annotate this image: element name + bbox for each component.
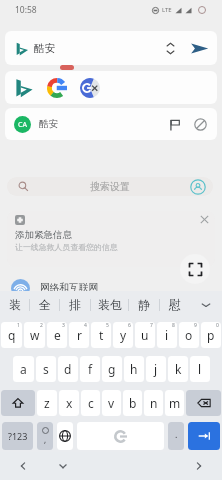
button[interactable]: v	[102, 390, 121, 416]
button[interactable]: w	[24, 322, 45, 348]
button[interactable]: a	[13, 356, 34, 382]
button[interactable]: Forward	[176, 452, 222, 480]
staticText: r	[77, 327, 82, 343]
staticText: ?123	[8, 430, 28, 442]
button[interactable]: f	[80, 356, 100, 382]
staticText: a	[20, 361, 27, 377]
staticText: m	[169, 395, 181, 411]
button[interactable]: .	[168, 422, 184, 450]
button[interactable]: e	[47, 322, 67, 348]
staticText: w	[30, 327, 40, 343]
button[interactable]: ?123	[2, 422, 33, 450]
button[interactable]: 全	[30, 291, 59, 318]
staticText: j	[154, 361, 158, 377]
staticText: 装	[9, 297, 21, 312]
button[interactable]: Block	[192, 116, 209, 133]
staticText: 3	[62, 322, 65, 329]
staticText: 静	[138, 297, 150, 312]
button[interactable]: d	[58, 356, 78, 382]
button[interactable]: Dismiss	[200, 215, 209, 224]
staticText: 全	[39, 297, 51, 312]
button[interactable]: x	[59, 390, 79, 416]
button[interactable]: 静	[129, 291, 159, 318]
staticText: u	[141, 327, 149, 343]
button[interactable]: Enter	[188, 422, 220, 450]
button[interactable]: u	[135, 322, 155, 348]
staticText: n	[150, 395, 158, 411]
button[interactable]: m	[165, 390, 184, 416]
staticText: g	[108, 361, 116, 377]
button[interactable]: k	[168, 356, 188, 382]
button[interactable]: g	[102, 356, 122, 382]
staticText: 装包	[98, 297, 122, 312]
button[interactable]: s	[36, 356, 56, 382]
button[interactable]: Fullscreen	[180, 254, 210, 284]
staticText: ,	[44, 434, 47, 445]
staticText: v	[108, 395, 115, 411]
button[interactable]: q	[1, 322, 22, 348]
button[interactable]: Back	[0, 452, 46, 480]
staticText: q	[8, 327, 16, 343]
button[interactable]: Space	[77, 422, 164, 450]
staticText: h	[130, 361, 138, 377]
button[interactable]: i	[157, 322, 177, 348]
staticText: 搜索设置	[90, 180, 130, 193]
staticText: 7	[150, 322, 153, 329]
button[interactable]: 排	[60, 291, 90, 318]
staticText: LTE	[162, 6, 172, 14]
staticText: i	[165, 327, 169, 343]
button[interactable]: t	[91, 322, 111, 348]
button[interactable]: Translate	[80, 78, 100, 98]
button[interactable]: l	[190, 356, 210, 382]
staticText: 8	[172, 322, 175, 329]
staticText: 0	[216, 322, 219, 329]
staticText: z	[44, 395, 50, 411]
staticText: x	[66, 395, 73, 411]
button[interactable]: CA	[5, 108, 217, 140]
staticText: 4	[84, 322, 87, 329]
staticText: s	[43, 361, 49, 377]
button[interactable]: p	[201, 322, 221, 348]
button[interactable]: 添加紧急信息	[7, 211, 215, 267]
staticText: 排	[69, 297, 81, 312]
button[interactable]: 装	[0, 291, 29, 318]
button[interactable]: h	[124, 356, 144, 382]
button[interactable]: o	[179, 322, 199, 348]
staticText: 2	[40, 322, 43, 329]
button[interactable]: Bing	[14, 78, 34, 98]
button[interactable]: Google	[47, 78, 67, 98]
button[interactable]: n	[144, 390, 163, 416]
button[interactable]: Bing	[5, 71, 217, 104]
button[interactable]: c	[81, 390, 100, 416]
staticText: 5	[106, 322, 109, 329]
button[interactable]: 装包	[91, 291, 128, 318]
button[interactable]: j	[146, 356, 166, 382]
button[interactable]: 搜索设置	[7, 177, 213, 196]
button[interactable]: y	[113, 322, 133, 348]
staticText: l	[198, 361, 202, 377]
staticText: e	[54, 327, 61, 343]
button[interactable]: Language	[57, 422, 73, 450]
staticText: k	[175, 361, 182, 377]
button[interactable]: Backspace	[186, 390, 221, 416]
button[interactable]: Report	[166, 116, 183, 133]
staticText: b	[129, 395, 137, 411]
button[interactable]: b	[123, 390, 142, 416]
staticText: d	[64, 361, 72, 377]
staticText: .	[175, 428, 178, 440]
button[interactable]: 酷安	[5, 31, 217, 65]
staticText: 1	[17, 322, 20, 329]
staticText: p	[207, 327, 215, 343]
button[interactable]: ,	[37, 422, 53, 450]
staticText: 网络和互联网	[40, 282, 99, 294]
button[interactable]: Expand	[190, 291, 222, 318]
button[interactable]: 慰	[160, 291, 190, 318]
button[interactable]: z	[37, 390, 57, 416]
staticText: y	[120, 327, 127, 343]
button[interactable]: r	[69, 322, 89, 348]
button[interactable]: Hide keyboard	[46, 452, 79, 480]
staticText: 6	[128, 322, 131, 329]
button[interactable]: Shift	[1, 390, 35, 416]
staticText: f	[88, 361, 93, 377]
staticText: 慰	[169, 297, 181, 312]
